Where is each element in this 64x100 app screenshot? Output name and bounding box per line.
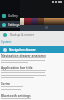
button[interactable]: Navigation drawer bbox=[0, 46, 64, 53]
staticText: Settings bbox=[8, 23, 20, 27]
button[interactable]: Application bar title bbox=[1, 66, 33, 70]
button[interactable]: Bluetooth settings bbox=[1, 94, 31, 98]
button[interactable]: Gallery bbox=[0, 12, 20, 19]
staticText: Navigation drawer bbox=[9, 48, 36, 52]
button[interactable]: Scrim bbox=[1, 82, 10, 86]
staticText: Gallery bbox=[8, 14, 18, 18]
button[interactable]: Settings bbox=[0, 21, 20, 28]
staticText: Backup & restore bbox=[10, 33, 35, 37]
staticText: System bbox=[1, 40, 12, 44]
button[interactable]: Backup & restore bbox=[0, 31, 64, 38]
button[interactable]: Navigation drawer anatomy bbox=[1, 54, 46, 58]
